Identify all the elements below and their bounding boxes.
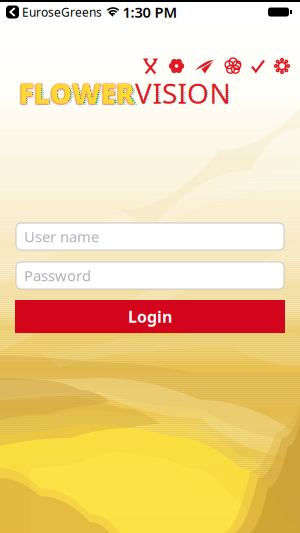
staticText: FLOWER xyxy=(20,74,136,112)
staticText: EuroseGreens xyxy=(22,4,102,20)
staticText: FLOWER xyxy=(19,73,135,111)
button[interactable]: Password xyxy=(16,262,284,289)
staticText: Password xyxy=(24,266,91,285)
button[interactable]: Login xyxy=(15,300,285,333)
staticText: 1:30 PM xyxy=(122,2,177,22)
button[interactable]: User name xyxy=(16,223,284,250)
staticText: VISION xyxy=(135,74,230,112)
staticText: Login xyxy=(128,306,172,327)
staticText: FLOWER xyxy=(20,76,136,113)
staticText: FLOWER xyxy=(19,75,135,113)
staticText: FLOWER xyxy=(18,74,134,112)
staticText: FLOWER xyxy=(19,74,135,112)
staticText: User name xyxy=(24,227,99,246)
staticText: FLOWER xyxy=(18,76,134,113)
